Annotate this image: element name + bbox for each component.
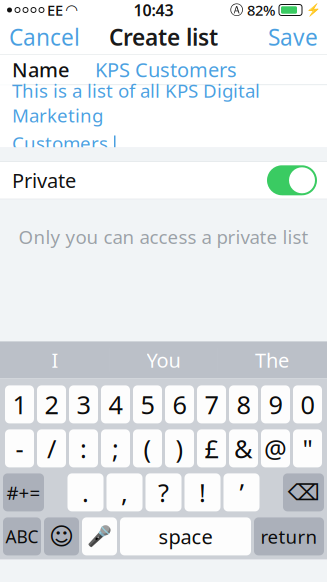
button[interactable]: You: [109, 341, 217, 378]
button[interactable]: The: [218, 341, 326, 378]
button[interactable]: 8: [229, 385, 258, 423]
button[interactable]: #+=: [3, 473, 44, 511]
button[interactable]: 🎤: [82, 517, 117, 555]
button[interactable]: Name: [0, 55, 327, 85]
staticText: -: [15, 432, 23, 465]
staticText: Save: [268, 22, 318, 52]
staticText: KPS Customers: [95, 56, 237, 83]
staticText: return: [260, 524, 317, 549]
button[interactable]: /: [37, 429, 66, 467]
staticText: ": [302, 432, 312, 465]
staticText: 1: [12, 388, 26, 421]
staticText: Create list: [109, 22, 218, 52]
button[interactable]: (: [133, 429, 162, 467]
button[interactable]: 0: [293, 385, 322, 423]
button[interactable]: This is a list of all KPS Digital Market…: [0, 85, 327, 147]
staticText: I: [51, 347, 58, 373]
staticText: &: [234, 432, 253, 465]
button[interactable]: 7: [197, 385, 226, 423]
staticText: 8: [236, 388, 250, 421]
button[interactable]: 3: [69, 385, 98, 423]
button[interactable]: ’: [223, 473, 259, 511]
button[interactable]: ABC: [3, 517, 41, 555]
staticText: 2: [44, 388, 58, 421]
staticText: ,: [121, 476, 128, 509]
staticText: 7: [204, 388, 218, 421]
staticText: Name: [12, 56, 69, 83]
staticText: You: [146, 347, 180, 373]
staticText: £: [204, 432, 218, 465]
staticText: Customers.: [12, 131, 113, 155]
button[interactable]: 4: [101, 385, 130, 423]
staticText: 9: [268, 388, 282, 421]
button[interactable]: @: [261, 429, 290, 467]
staticText: The: [255, 347, 289, 373]
staticText: (: [143, 432, 151, 465]
button[interactable]: £: [197, 429, 226, 467]
staticText: 3: [76, 388, 90, 421]
staticText: :: [80, 432, 87, 465]
button[interactable]: :: [69, 429, 98, 467]
staticText: !: [199, 476, 206, 509]
staticText: This is a list of all KPS Digital Market…: [12, 78, 260, 128]
button[interactable]: &: [229, 429, 258, 467]
staticText: /: [47, 432, 56, 465]
button[interactable]: 1: [5, 385, 34, 423]
button[interactable]: Private: [0, 162, 327, 199]
button[interactable]: ?: [145, 473, 181, 511]
staticText: Private: [12, 167, 76, 194]
staticText: ?: [158, 476, 169, 509]
button[interactable]: 6: [165, 385, 194, 423]
staticText: 🎤: [87, 525, 112, 548]
staticText: Ⓐ: [230, 2, 243, 18]
button[interactable]: ): [165, 429, 194, 467]
staticText: .: [82, 476, 89, 509]
button[interactable]: ;: [101, 429, 130, 467]
button[interactable]: return: [254, 517, 324, 555]
button[interactable]: 5: [133, 385, 162, 423]
staticText: 0: [300, 388, 314, 421]
staticText: 10:43: [133, 0, 173, 21]
button[interactable]: !: [184, 473, 220, 511]
button[interactable]: ☺: [44, 517, 79, 555]
button[interactable]: space: [120, 517, 251, 555]
staticText: 6: [172, 388, 186, 421]
staticText: ABC: [5, 525, 38, 548]
staticText: ☺: [49, 523, 74, 550]
button[interactable]: 2: [37, 385, 66, 423]
staticText: space: [158, 523, 212, 550]
staticText: ⌫: [287, 479, 319, 505]
staticText: ): [175, 432, 183, 465]
staticText: ;: [112, 432, 119, 465]
staticText: Only you can access a private list: [18, 224, 308, 249]
staticText: @: [264, 432, 287, 465]
button[interactable]: ": [293, 429, 322, 467]
staticText: EE: [47, 0, 63, 20]
staticText: 82%: [247, 0, 275, 20]
staticText: Cancel: [9, 22, 80, 52]
button[interactable]: -: [5, 429, 34, 467]
staticText: 5: [140, 388, 154, 421]
staticText: ’: [239, 476, 243, 509]
staticText: ◠: [66, 2, 77, 18]
button[interactable]: ⌫: [283, 473, 324, 511]
button[interactable]: I: [1, 341, 109, 378]
staticText: #+=: [6, 480, 40, 505]
button[interactable]: Save: [259, 20, 327, 54]
button[interactable]: Cancel: [0, 20, 89, 54]
staticText: 4: [108, 388, 122, 421]
staticText: ⚡: [306, 3, 321, 17]
button[interactable]: 9: [261, 385, 290, 423]
button[interactable]: ,: [106, 473, 142, 511]
button[interactable]: .: [67, 473, 103, 511]
